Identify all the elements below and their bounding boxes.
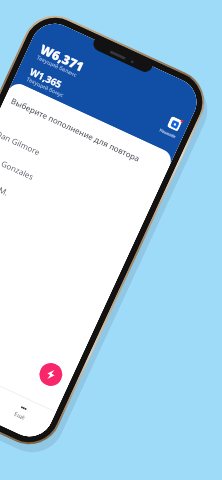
staticText: W6,371 <box>37 41 87 76</box>
button[interactable]: Кошелёк <box>167 116 183 132</box>
button[interactable]: Новый перевод <box>36 359 66 390</box>
staticText: Текущий баланс <box>36 53 79 78</box>
staticText: Кошелёк <box>159 127 177 139</box>
staticText: Dan Gilmore <box>0 128 42 158</box>
button[interactable]: José Gonzales <box>0 141 147 237</box>
staticText: Текущий бонус <box>26 75 66 99</box>
staticText: José Gonzales <box>0 150 36 182</box>
staticText: W1,365 <box>28 65 64 91</box>
button[interactable]: Dan Gilmore <box>0 118 157 215</box>
button[interactable]: Jannet M. <box>0 164 136 260</box>
staticText: Выберите пополнение для повтора <box>9 95 142 164</box>
button[interactable]: Ещё <box>0 397 41 435</box>
staticText: Ещё <box>13 410 27 421</box>
staticText: Jannet M. <box>0 173 11 198</box>
